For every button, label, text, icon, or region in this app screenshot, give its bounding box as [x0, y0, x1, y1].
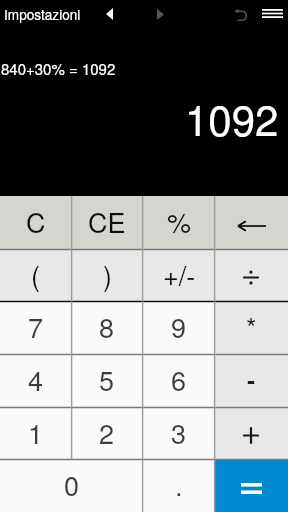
button[interactable]: . [143, 459, 215, 512]
button[interactable]: CE [71, 196, 143, 249]
staticText: ) [103, 255, 112, 294]
button[interactable]: +/- [143, 249, 215, 301]
button[interactable]: Impostazioni [0, 0, 87, 25]
button[interactable]: 9 [143, 301, 215, 354]
staticText: ( [31, 255, 40, 294]
staticText: 8 [99, 307, 115, 346]
button[interactable]: Menu [260, 1, 284, 25]
staticText: +/- [163, 255, 196, 294]
staticText: Impostazioni [4, 4, 81, 23]
other: Backspace [214, 196, 288, 249]
staticText: 1 [28, 413, 44, 452]
other: Divide [214, 249, 288, 301]
staticText: * [246, 307, 257, 346]
button[interactable]: Plus [214, 407, 288, 459]
button[interactable]: ( [0, 249, 71, 301]
button[interactable]: C [0, 196, 71, 249]
button[interactable]: Forward [150, 3, 170, 23]
staticText: 5 [99, 360, 115, 399]
staticText: 0 [64, 465, 80, 504]
other: Minus [214, 354, 288, 407]
button[interactable]: 5 [71, 354, 143, 407]
other: Plus [214, 407, 288, 459]
button[interactable]: Undo [229, 2, 251, 24]
button[interactable]: 3 [143, 407, 215, 459]
staticText: 840+30% = 1092 [1, 58, 116, 79]
button[interactable]: 8 [71, 301, 143, 354]
button[interactable]: Divide [214, 249, 288, 301]
button[interactable]: * [214, 301, 288, 354]
button[interactable]: 1 [0, 407, 71, 459]
button[interactable]: 2 [71, 407, 143, 459]
button[interactable]: 7 [0, 301, 71, 354]
staticText: 6 [171, 360, 187, 399]
button[interactable]: Minus [214, 354, 288, 407]
staticText: 7 [28, 307, 44, 346]
button[interactable]: Back [99, 3, 119, 23]
staticText: CE [88, 202, 126, 241]
button[interactable]: Equals [214, 459, 288, 512]
button[interactable]: 6 [143, 354, 215, 407]
button[interactable]: 0 [0, 459, 143, 512]
staticText: 9 [171, 307, 187, 346]
staticText: 3 [171, 413, 187, 452]
button[interactable]: ) [71, 249, 143, 301]
staticText: . [175, 465, 183, 504]
staticText: C [26, 202, 46, 241]
button[interactable]: 4 [0, 354, 71, 407]
button[interactable]: Backspace [214, 196, 288, 249]
button[interactable]: % [143, 196, 215, 249]
staticText: 4 [28, 360, 44, 399]
staticText: 1092 [185, 88, 279, 148]
other: Equals [214, 459, 288, 512]
staticText: % [167, 202, 192, 241]
staticText: 2 [99, 413, 115, 452]
